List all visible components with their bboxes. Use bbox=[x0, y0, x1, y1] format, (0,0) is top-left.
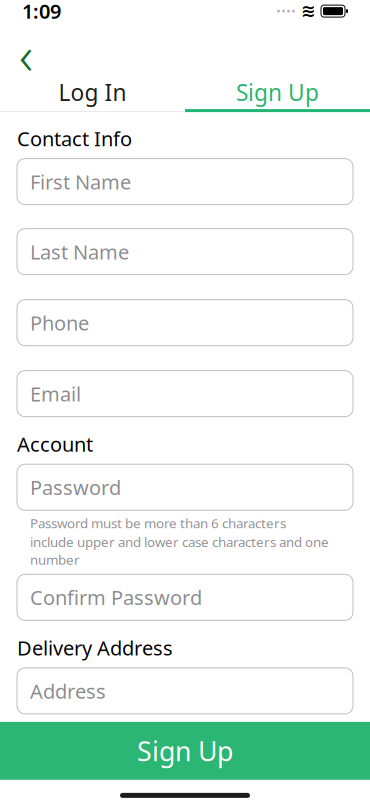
staticText: Phone bbox=[30, 309, 89, 336]
staticText: First Name bbox=[30, 168, 131, 195]
button[interactable]: Email bbox=[17, 371, 353, 417]
staticText: Password must be more than 6 characters bbox=[30, 514, 286, 532]
staticText: ‹ bbox=[19, 19, 33, 89]
button[interactable]: Sign Up bbox=[185, 75, 370, 109]
staticText: include upper and lower case characters … bbox=[30, 533, 329, 568]
button[interactable]: Confirm Password bbox=[17, 574, 353, 620]
staticText: Email bbox=[30, 380, 81, 407]
button[interactable]: Password bbox=[17, 464, 353, 510]
staticText: Log In bbox=[58, 77, 126, 107]
staticText: Last Name bbox=[30, 238, 129, 265]
staticText: Sign Up bbox=[236, 77, 319, 107]
button[interactable]: First Name bbox=[17, 159, 353, 205]
staticText: Address bbox=[30, 678, 106, 704]
button[interactable]: Log In bbox=[0, 75, 185, 109]
staticText: 1:09 bbox=[22, 0, 61, 24]
button[interactable]: Last Name bbox=[17, 229, 353, 275]
button[interactable]: Sign Up bbox=[0, 722, 370, 780]
staticText: Password bbox=[30, 474, 121, 500]
staticText: ≋ bbox=[301, 1, 316, 21]
button[interactable]: Address bbox=[17, 668, 353, 714]
staticText: Account bbox=[17, 431, 93, 457]
staticText: Contact Info bbox=[17, 125, 132, 152]
staticText: Delivery Address bbox=[17, 634, 173, 661]
button[interactable]: Back bbox=[4, 34, 48, 74]
staticText: Sign Up bbox=[137, 733, 233, 769]
button[interactable]: Phone bbox=[17, 300, 353, 346]
staticText: Confirm Password bbox=[30, 584, 202, 611]
